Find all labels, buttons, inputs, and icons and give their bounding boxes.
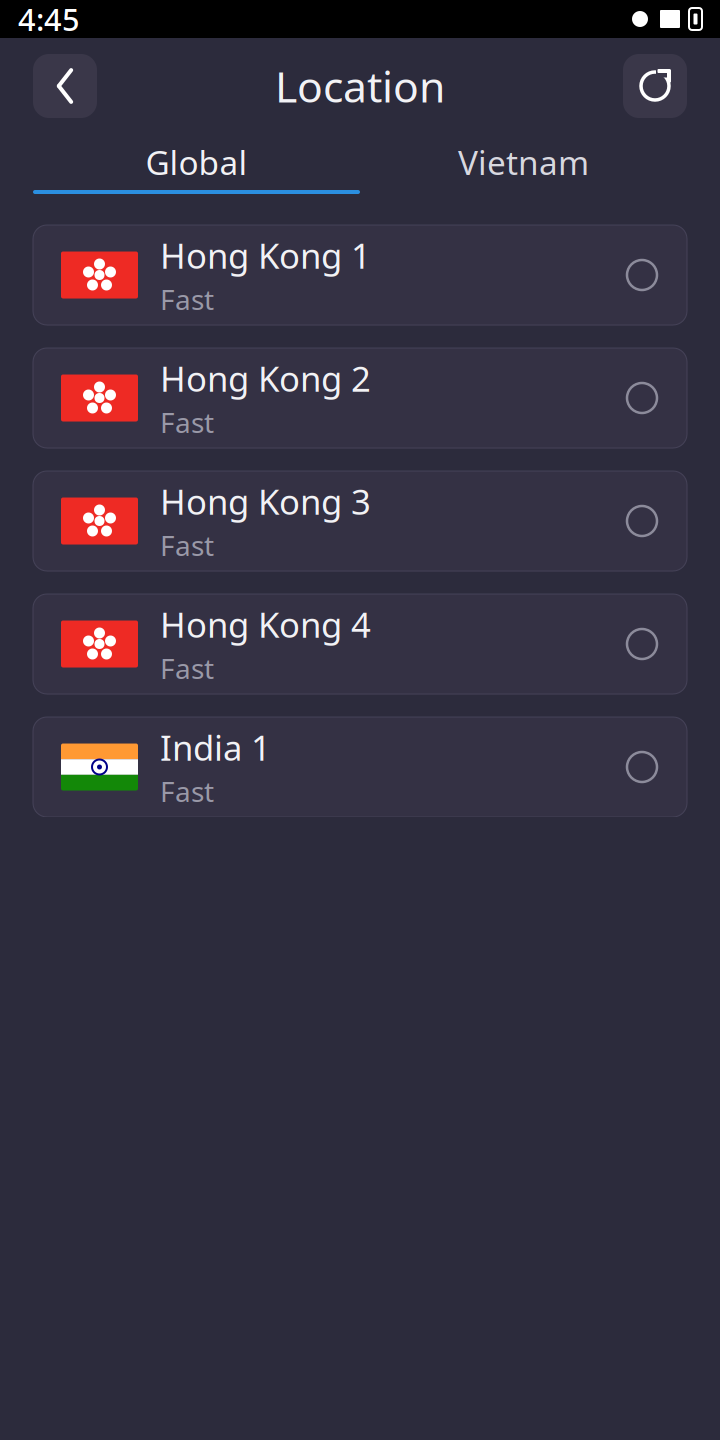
staticText: 4:45 [18, 0, 80, 39]
button[interactable]: Hong Kong 2 [33, 348, 687, 448]
button[interactable]: Back [33, 54, 97, 118]
staticText: Fast [160, 772, 214, 810]
button[interactable]: Hong Kong 1 [33, 225, 687, 325]
staticText: Hong Kong 2 [160, 355, 371, 401]
button[interactable]: India 1 [33, 717, 687, 817]
staticText: Fast [160, 526, 214, 564]
staticText: Global [145, 140, 247, 184]
staticText: Hong Kong 3 [160, 478, 371, 524]
button[interactable]: Refresh [623, 54, 687, 118]
staticText: Fast [160, 403, 214, 441]
staticText: India 1 [160, 724, 271, 770]
button[interactable]: Global [33, 134, 360, 190]
staticText: Location [275, 58, 445, 114]
staticText: Hong Kong 4 [160, 601, 371, 647]
staticText: Vietnam [458, 140, 589, 184]
button[interactable]: Hong Kong 3 [33, 471, 687, 571]
staticText: Hong Kong 1 [160, 232, 371, 278]
button[interactable]: Vietnam [360, 134, 687, 190]
staticText: Fast [160, 280, 214, 318]
staticText: Fast [160, 649, 214, 687]
button[interactable]: Hong Kong 4 [33, 594, 687, 694]
